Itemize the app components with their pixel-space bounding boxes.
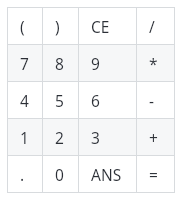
staticText: . — [20, 164, 25, 185]
staticText: - — [149, 90, 154, 111]
button[interactable]: 2 — [43, 119, 78, 155]
button[interactable]: 0 — [43, 156, 78, 192]
button[interactable]: 3 — [79, 119, 136, 155]
button[interactable]: 7 — [8, 45, 42, 81]
button[interactable]: + — [137, 119, 174, 155]
button[interactable]: ) — [43, 8, 78, 44]
staticText: / — [149, 16, 155, 37]
staticText: 7 — [20, 53, 29, 74]
staticText: 3 — [91, 127, 100, 148]
button[interactable]: 9 — [79, 45, 136, 81]
button[interactable]: - — [137, 82, 174, 118]
button[interactable]: 5 — [43, 82, 78, 118]
staticText: 0 — [55, 164, 64, 185]
button[interactable]: 6 — [79, 82, 136, 118]
staticText: 5 — [55, 90, 64, 111]
button[interactable]: ANS — [79, 156, 136, 192]
staticText: * — [149, 53, 158, 74]
staticText: 6 — [91, 90, 100, 111]
button[interactable]: * — [137, 45, 174, 81]
button[interactable]: = — [137, 156, 174, 192]
staticText: 8 — [55, 53, 64, 74]
button[interactable]: CE — [79, 8, 136, 44]
staticText: ) — [55, 16, 60, 37]
staticText: 9 — [91, 53, 100, 74]
button[interactable]: 4 — [8, 82, 42, 118]
button[interactable]: ( — [8, 8, 42, 44]
staticText: ANS — [91, 164, 122, 185]
button[interactable]: 1 — [8, 119, 42, 155]
staticText: + — [149, 127, 158, 148]
button[interactable]: 8 — [43, 45, 78, 81]
staticText: ( — [20, 16, 25, 37]
button[interactable]: . — [8, 156, 42, 192]
staticText: 4 — [20, 90, 29, 111]
staticText: 1 — [20, 127, 29, 148]
staticText: CE — [91, 16, 110, 37]
staticText: 2 — [55, 127, 64, 148]
staticText: = — [149, 164, 158, 185]
button[interactable]: / — [137, 8, 174, 44]
